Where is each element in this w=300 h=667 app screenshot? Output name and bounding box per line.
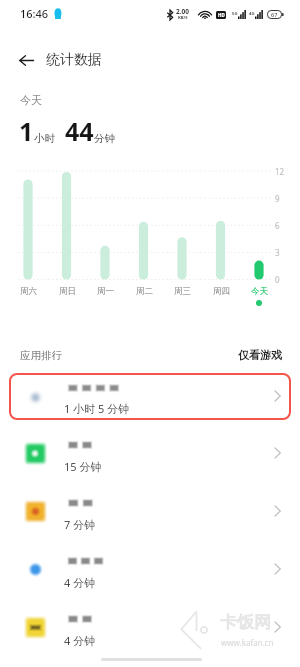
staticText: 卡饭网 xyxy=(220,612,271,633)
staticText: 15 分钟 xyxy=(64,459,102,474)
staticText: 44 xyxy=(65,114,94,148)
button[interactable] xyxy=(0,427,300,485)
staticText: 1 小时 5 分钟 xyxy=(64,401,130,416)
staticText: 12 xyxy=(275,166,285,177)
staticText: HD xyxy=(218,12,225,18)
staticText: 2.00 xyxy=(176,7,189,16)
staticText: 统计数据 xyxy=(46,51,102,69)
staticText: 3 xyxy=(275,247,280,258)
staticText: 16:46 xyxy=(20,6,49,21)
staticText: 今天 xyxy=(20,93,42,107)
staticText: 5G xyxy=(232,11,238,17)
staticText: 周二 xyxy=(136,286,153,297)
button[interactable] xyxy=(9,373,291,420)
staticText: 67 xyxy=(271,11,278,18)
staticText: 0 xyxy=(275,274,280,285)
staticText: 分钟 xyxy=(94,132,115,145)
staticText: www.kafan.cn xyxy=(221,637,274,648)
staticText: 应用排行 xyxy=(20,349,62,362)
button[interactable] xyxy=(0,543,300,601)
staticText: KB/S xyxy=(178,15,188,21)
button[interactable] xyxy=(0,485,300,543)
staticText: 周四 xyxy=(213,286,230,297)
staticText: 小时 xyxy=(34,132,55,145)
staticText: 仅看游戏 xyxy=(238,348,282,362)
staticText: 周一 xyxy=(97,286,114,297)
button[interactable]: 仅看游戏 xyxy=(238,348,282,362)
staticText: 周日 xyxy=(59,286,76,297)
staticText: 4 分钟 xyxy=(64,575,96,590)
staticText: 9 xyxy=(275,193,280,204)
staticText: 6 xyxy=(275,220,280,231)
staticText: 周六 xyxy=(20,286,37,297)
button[interactable] xyxy=(0,601,300,659)
button[interactable]: Back xyxy=(12,46,40,74)
staticText: 周三 xyxy=(174,286,191,297)
staticText: 4 分钟 xyxy=(64,633,96,648)
staticText: 今天 xyxy=(251,286,268,297)
staticText: 7 分钟 xyxy=(64,517,96,532)
staticText: 1 xyxy=(19,114,34,148)
staticText: 4G xyxy=(249,11,255,17)
